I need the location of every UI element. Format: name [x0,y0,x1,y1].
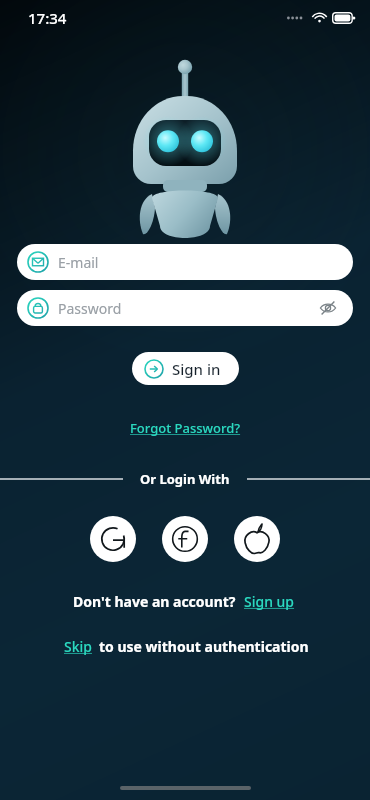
button[interactable]: Sign in [132,352,239,385]
staticText: 17:34 [28,8,67,28]
staticText: Forgot Password? [130,419,241,437]
staticText: E-mail [58,253,99,272]
button[interactable]: Sign in with Facebook [162,516,208,562]
button[interactable]: Show password [317,297,339,319]
button[interactable]: Sign up [242,590,297,613]
button[interactable]: Sign in with Google [90,516,136,562]
button[interactable]: Sign in with Apple [234,516,280,562]
staticText: Sign in [172,359,221,379]
button[interactable]: Forgot Password? [124,417,247,439]
button[interactable]: Skip [62,635,94,658]
staticText: Password [58,299,122,318]
staticText: Skip [64,637,92,656]
staticText: Sign up [244,592,295,611]
staticText: to use without authentication [99,637,309,656]
button[interactable]: E-mail [17,244,353,280]
staticText: Or Login With [140,470,230,488]
button[interactable]: Password [17,290,353,326]
staticText: Don't have an account? [73,592,236,611]
